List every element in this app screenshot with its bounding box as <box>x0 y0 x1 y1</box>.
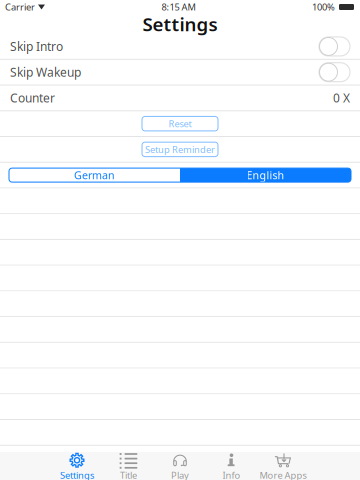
button[interactable]: Setup Reminder <box>142 142 218 157</box>
button[interactable]: Reset <box>142 116 218 131</box>
staticText: Title <box>120 469 137 480</box>
staticText: Info <box>222 469 240 480</box>
staticText: Setup Reminder <box>145 143 215 156</box>
button[interactable]: More Apps <box>257 448 309 480</box>
staticText: Settings <box>60 469 94 480</box>
staticText: 0 X <box>333 90 350 106</box>
staticText: Settings <box>142 12 217 36</box>
staticText: Reset <box>168 117 191 130</box>
staticText: Counter <box>10 90 55 106</box>
button[interactable]: Play <box>154 448 206 480</box>
staticText: Skip Intro <box>10 38 63 54</box>
staticText: Skip Wakeup <box>10 64 81 80</box>
button[interactable]: Settings <box>51 448 103 480</box>
staticText: More Apps <box>259 469 306 480</box>
staticText: 100% <box>312 1 335 13</box>
staticText: German <box>74 168 115 182</box>
button[interactable]: Info <box>206 448 257 480</box>
button[interactable]: German <box>9 168 180 182</box>
button[interactable]: Title <box>103 448 154 480</box>
staticText: Carrier <box>5 1 35 13</box>
staticText: English <box>246 168 284 182</box>
button[interactable]: English <box>180 168 351 182</box>
staticText: 8:15 AM <box>161 1 195 13</box>
staticText: Play <box>171 469 189 480</box>
